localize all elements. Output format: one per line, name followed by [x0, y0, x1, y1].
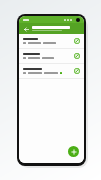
button[interactable]: Edit milestone: [19, 34, 84, 49]
button[interactable]: Edit milestone: [74, 38, 80, 44]
button[interactable]: Back: [22, 25, 30, 33]
button[interactable]: Edit milestone: [19, 64, 84, 79]
button[interactable]: Edit milestone: [74, 68, 80, 74]
button[interactable]: Edit milestone: [19, 49, 84, 64]
button[interactable]: Add milestone: [68, 146, 79, 157]
button[interactable]: Edit milestone: [74, 53, 80, 59]
